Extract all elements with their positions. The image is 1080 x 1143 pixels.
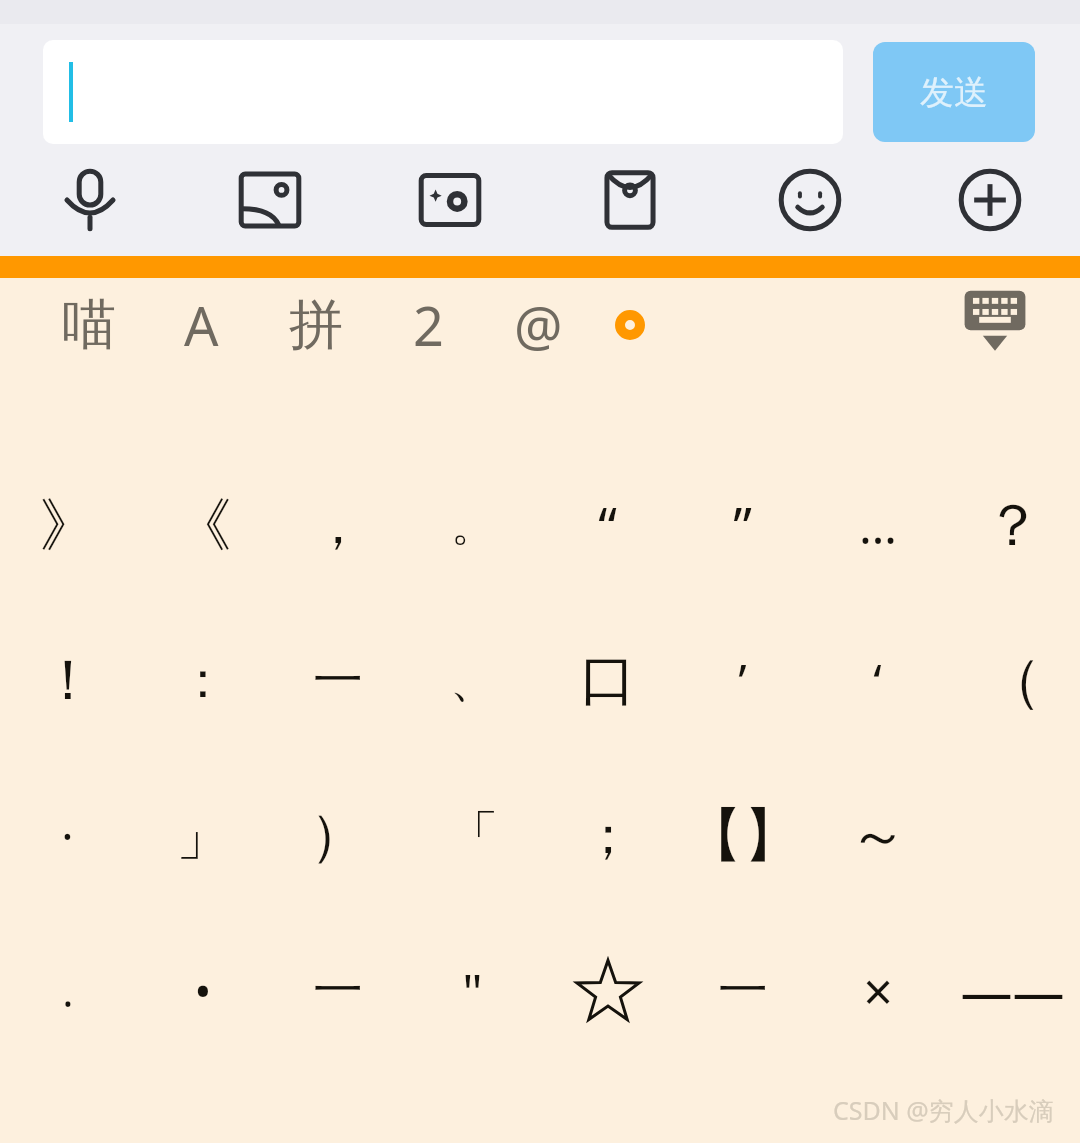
button[interactable]: 《 — [135, 448, 270, 603]
staticText: 一 — [718, 959, 768, 1022]
button[interactable]: ： — [135, 603, 270, 758]
staticText: 。 — [451, 498, 495, 553]
staticText: ； — [582, 803, 634, 869]
staticText: 【】 — [685, 799, 801, 872]
button[interactable] — [43, 40, 843, 144]
button[interactable]: × — [810, 913, 945, 1068]
staticText: @ — [514, 288, 563, 362]
staticText: ？ — [984, 489, 1042, 562]
button[interactable]: ” — [675, 448, 810, 603]
staticText: 一 — [313, 959, 363, 1022]
staticText: 一 — [313, 649, 363, 712]
button[interactable]: Voice message — [40, 150, 140, 250]
staticText: 」 — [176, 802, 230, 870]
button[interactable]: More — [940, 150, 1040, 250]
button[interactable]: 拼 — [285, 281, 347, 369]
staticText: CSDN @穷人小水滴 — [833, 1093, 1054, 1127]
button[interactable] — [540, 913, 675, 1068]
staticText: （ — [984, 644, 1042, 717]
button[interactable]: “ — [540, 448, 675, 603]
button[interactable]: " — [405, 913, 540, 1068]
staticText: 2 — [413, 288, 444, 362]
button[interactable]: 一 — [270, 913, 405, 1068]
button[interactable]: —— — [945, 913, 1080, 1068]
button[interactable]: . — [0, 913, 135, 1068]
staticText: 「 — [447, 803, 499, 869]
staticText: ， — [312, 493, 364, 559]
button[interactable]: A — [180, 278, 223, 372]
button[interactable]: （ — [945, 603, 1080, 758]
button[interactable]: • — [135, 913, 270, 1068]
staticText: . — [62, 962, 74, 1019]
staticText: A — [184, 288, 219, 362]
staticText: 、 — [450, 652, 496, 710]
staticText: • — [194, 959, 212, 1022]
staticText: · — [61, 804, 74, 867]
button[interactable]: 」 — [135, 758, 270, 913]
staticText: … — [859, 493, 897, 558]
staticText: ’ — [738, 648, 747, 713]
button[interactable]: 口 — [540, 603, 675, 758]
staticText: ” — [733, 490, 752, 561]
button[interactable]: ！ — [0, 603, 135, 758]
staticText: 喵 — [62, 291, 116, 359]
staticText: × — [863, 955, 893, 1026]
staticText: ～ — [849, 799, 907, 872]
staticText: ‘ — [873, 648, 882, 713]
staticText: " — [462, 957, 483, 1025]
button[interactable]: ？ — [945, 448, 1080, 603]
staticText: 口 — [580, 645, 636, 716]
staticText: 发送 — [920, 71, 988, 114]
button[interactable]: 喵 — [58, 281, 120, 369]
button[interactable]: 发送 — [873, 42, 1035, 142]
button[interactable]: Emoji — [760, 150, 860, 250]
staticText: ） — [310, 800, 366, 871]
button[interactable]: Photo — [220, 150, 320, 250]
button[interactable]: ， — [270, 448, 405, 603]
button[interactable]: 。 — [405, 448, 540, 603]
button[interactable]: Settings dot — [607, 302, 653, 348]
button[interactable]: ） — [270, 758, 405, 913]
button[interactable]: Hide keyboard — [950, 280, 1040, 370]
button[interactable]: Camera effects — [400, 150, 500, 250]
button[interactable]: … — [810, 448, 945, 603]
staticText: 》 — [39, 489, 97, 562]
button[interactable]: 一 — [270, 603, 405, 758]
button[interactable]: 》 — [0, 448, 135, 603]
button[interactable]: @ — [510, 278, 567, 372]
button[interactable]: ‘ — [810, 603, 945, 758]
button[interactable]: Red packet — [580, 150, 680, 250]
staticText: —— — [960, 955, 1065, 1026]
button[interactable]: 一 — [675, 913, 810, 1068]
staticText: ！ — [40, 645, 96, 716]
staticText: 拼 — [289, 291, 343, 359]
button[interactable]: 、 — [405, 603, 540, 758]
staticText: ： — [178, 649, 228, 712]
button[interactable]: ～ — [810, 758, 945, 913]
staticText: “ — [598, 490, 617, 561]
button[interactable]: 「 — [405, 758, 540, 913]
button[interactable]: 【】 — [675, 758, 810, 913]
button[interactable]: ’ — [675, 603, 810, 758]
button[interactable]: 2 — [409, 278, 448, 372]
button[interactable]: ； — [540, 758, 675, 913]
button[interactable]: · — [0, 758, 135, 913]
staticText: 《 — [174, 489, 232, 562]
